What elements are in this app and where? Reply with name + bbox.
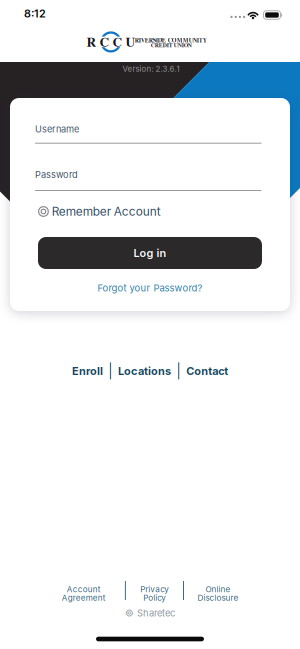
- button[interactable]: Remember Account: [39, 204, 161, 219]
- button[interactable]: Contact: [186, 364, 228, 377]
- staticText: Password: [35, 169, 78, 180]
- button[interactable]: Online: [197, 584, 238, 603]
- staticText: Version: 2.3.6.1: [122, 64, 179, 74]
- staticText: C: [112, 32, 122, 51]
- staticText: © Sharetec: [125, 608, 175, 619]
- staticText: U: [125, 32, 135, 51]
- staticText: CREDIT UNION: [151, 41, 192, 49]
- staticText: Username: [35, 124, 79, 135]
- button[interactable]: Log in: [38, 237, 262, 269]
- staticText: Forgot your Password?: [97, 282, 202, 294]
- staticText: Account: [67, 584, 101, 594]
- button[interactable]: Locations: [118, 364, 171, 377]
- staticText: Contact: [186, 364, 228, 377]
- staticText: Remember Account: [52, 204, 161, 219]
- staticText: Agreement: [62, 593, 106, 603]
- staticText: Online: [205, 584, 230, 594]
- staticText: Locations: [118, 364, 171, 377]
- staticText: Log in: [133, 246, 166, 260]
- button[interactable]: Username: [35, 124, 261, 144]
- staticText: R: [86, 32, 96, 51]
- staticText: Disclosure: [197, 593, 238, 603]
- staticText: Enroll: [72, 364, 103, 377]
- button[interactable]: Account: [62, 584, 106, 603]
- button[interactable]: Password: [35, 169, 261, 191]
- staticText: C: [99, 32, 109, 51]
- staticText: RIVERSIDE COMMUNITY: [135, 36, 207, 45]
- staticText: Privacy: [140, 584, 169, 594]
- staticText: 8:12: [24, 7, 46, 20]
- staticText: Policy: [143, 593, 166, 603]
- button[interactable]: Privacy: [140, 584, 169, 603]
- button[interactable]: Forgot your Password?: [97, 282, 202, 294]
- button[interactable]: Enroll: [72, 364, 103, 377]
